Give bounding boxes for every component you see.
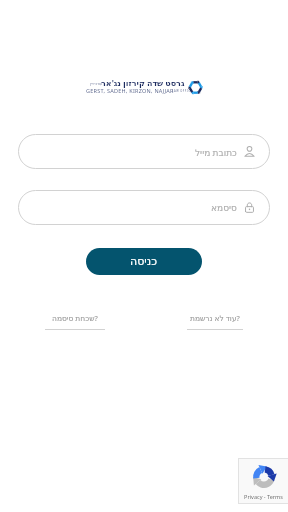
- staticText: סיסמא: [211, 203, 237, 213]
- button[interactable]: כניסה: [86, 248, 202, 275]
- staticText: כניסה: [130, 255, 158, 268]
- button[interactable]: עוד לא נרשמת?: [187, 313, 243, 330]
- staticText: שכחת סיסמה?: [52, 313, 98, 323]
- staticText: כתובת מייל: [195, 146, 237, 158]
- other: Password: [244, 202, 255, 213]
- staticText: Privacy - Terms: [244, 493, 283, 500]
- button[interactable]: reCAPTCHA: [238, 458, 288, 504]
- staticText: עוד לא נרשמת?: [190, 313, 240, 323]
- other: Email: [244, 146, 255, 157]
- button[interactable]: שכחת סיסמה?: [45, 313, 105, 330]
- staticText: עורכי דין: [90, 81, 103, 86]
- staticText: GERST, SADEH, KIRZON, NAJJAR: [86, 87, 174, 94]
- button[interactable]: סיסמא: [18, 190, 270, 225]
- staticText: L A W O F F I C E: [172, 89, 193, 93]
- button[interactable]: כתובת מייל: [18, 134, 270, 169]
- staticText: גרסט שדה קירזון נג'אר: [101, 77, 185, 88]
